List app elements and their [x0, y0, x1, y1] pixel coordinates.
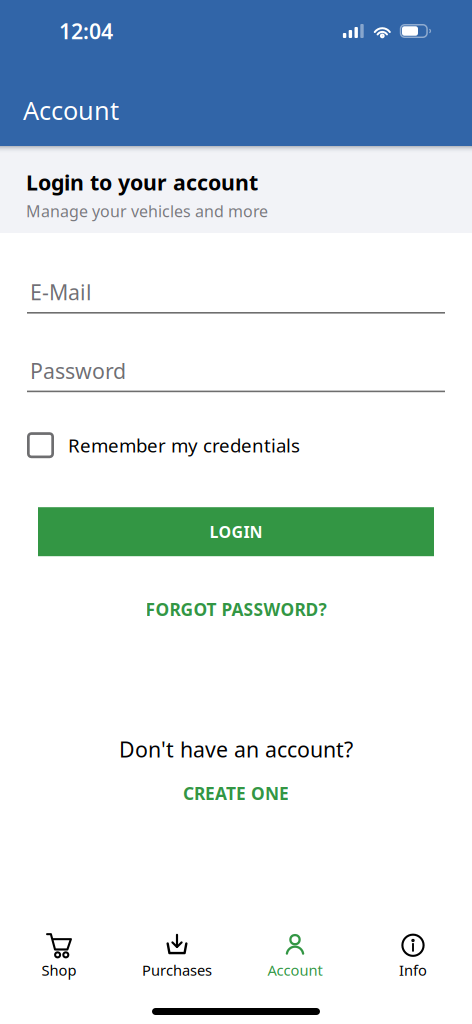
button[interactable]: FORGOT PASSWORD?: [0, 597, 472, 621]
staticText: FORGOT PASSWORD?: [145, 598, 326, 621]
staticText: 12:04: [59, 17, 113, 45]
staticText: Login to your account: [26, 168, 258, 196]
staticText: Account: [23, 93, 119, 127]
staticText: LOGIN: [209, 521, 262, 542]
staticText: Password: [30, 356, 126, 385]
button[interactable]: LOGIN: [0, 507, 472, 556]
staticText: Remember my credentials: [68, 433, 300, 458]
staticText: Don't have an account?: [119, 735, 353, 763]
staticText: Account: [267, 960, 322, 980]
staticText: E-Mail: [30, 278, 92, 306]
staticText: Shop: [41, 960, 76, 980]
button[interactable]: Info: [354, 924, 472, 982]
button[interactable]: Remember my credentials: [0, 432, 472, 458]
button[interactable]: CREATE ONE: [0, 781, 472, 805]
button[interactable]: Purchases: [118, 924, 236, 982]
staticText: Manage your vehicles and more: [26, 200, 268, 221]
staticText: CREATE ONE: [183, 782, 289, 805]
staticText: Purchases: [142, 960, 212, 980]
button[interactable]: Account: [236, 924, 354, 982]
staticText: Info: [399, 960, 427, 980]
button[interactable]: Shop: [0, 924, 118, 982]
